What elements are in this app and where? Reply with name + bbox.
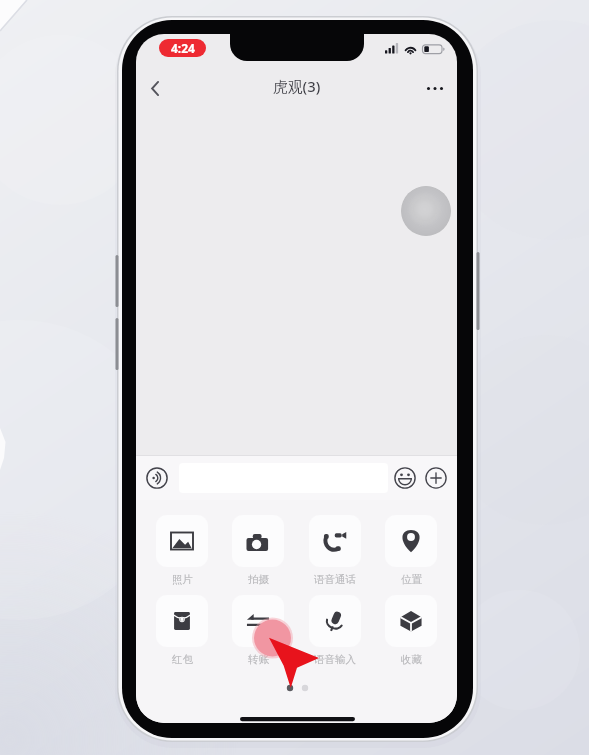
button[interactable]: 红包	[156, 595, 208, 666]
button[interactable]: Back	[136, 65, 175, 111]
staticText: 照片	[172, 573, 193, 586]
button[interactable]: 转账	[232, 595, 284, 666]
button[interactable]: Emoji	[390, 463, 420, 493]
staticText: 收藏	[401, 653, 422, 666]
staticText: 语音通话	[314, 573, 356, 586]
staticText: 转账	[248, 653, 269, 666]
staticText: 4:24	[171, 40, 195, 56]
button[interactable]: 收藏	[385, 595, 437, 666]
button[interactable]: 位置	[385, 515, 437, 586]
staticText: 语音输入	[314, 653, 356, 666]
button[interactable]: 语音输入	[309, 595, 361, 666]
staticText: 虎观(3)	[273, 76, 321, 96]
button[interactable]: More	[421, 463, 451, 493]
staticText: 位置	[401, 573, 422, 586]
button[interactable]: 语音通话	[309, 515, 361, 586]
staticText: 拍摄	[248, 573, 269, 586]
button[interactable]: 照片	[156, 515, 208, 586]
button[interactable]: 拍摄	[232, 515, 284, 586]
button[interactable]: Voice message	[141, 462, 173, 494]
button[interactable]: More options	[415, 65, 455, 111]
staticText: 红包	[172, 653, 193, 666]
